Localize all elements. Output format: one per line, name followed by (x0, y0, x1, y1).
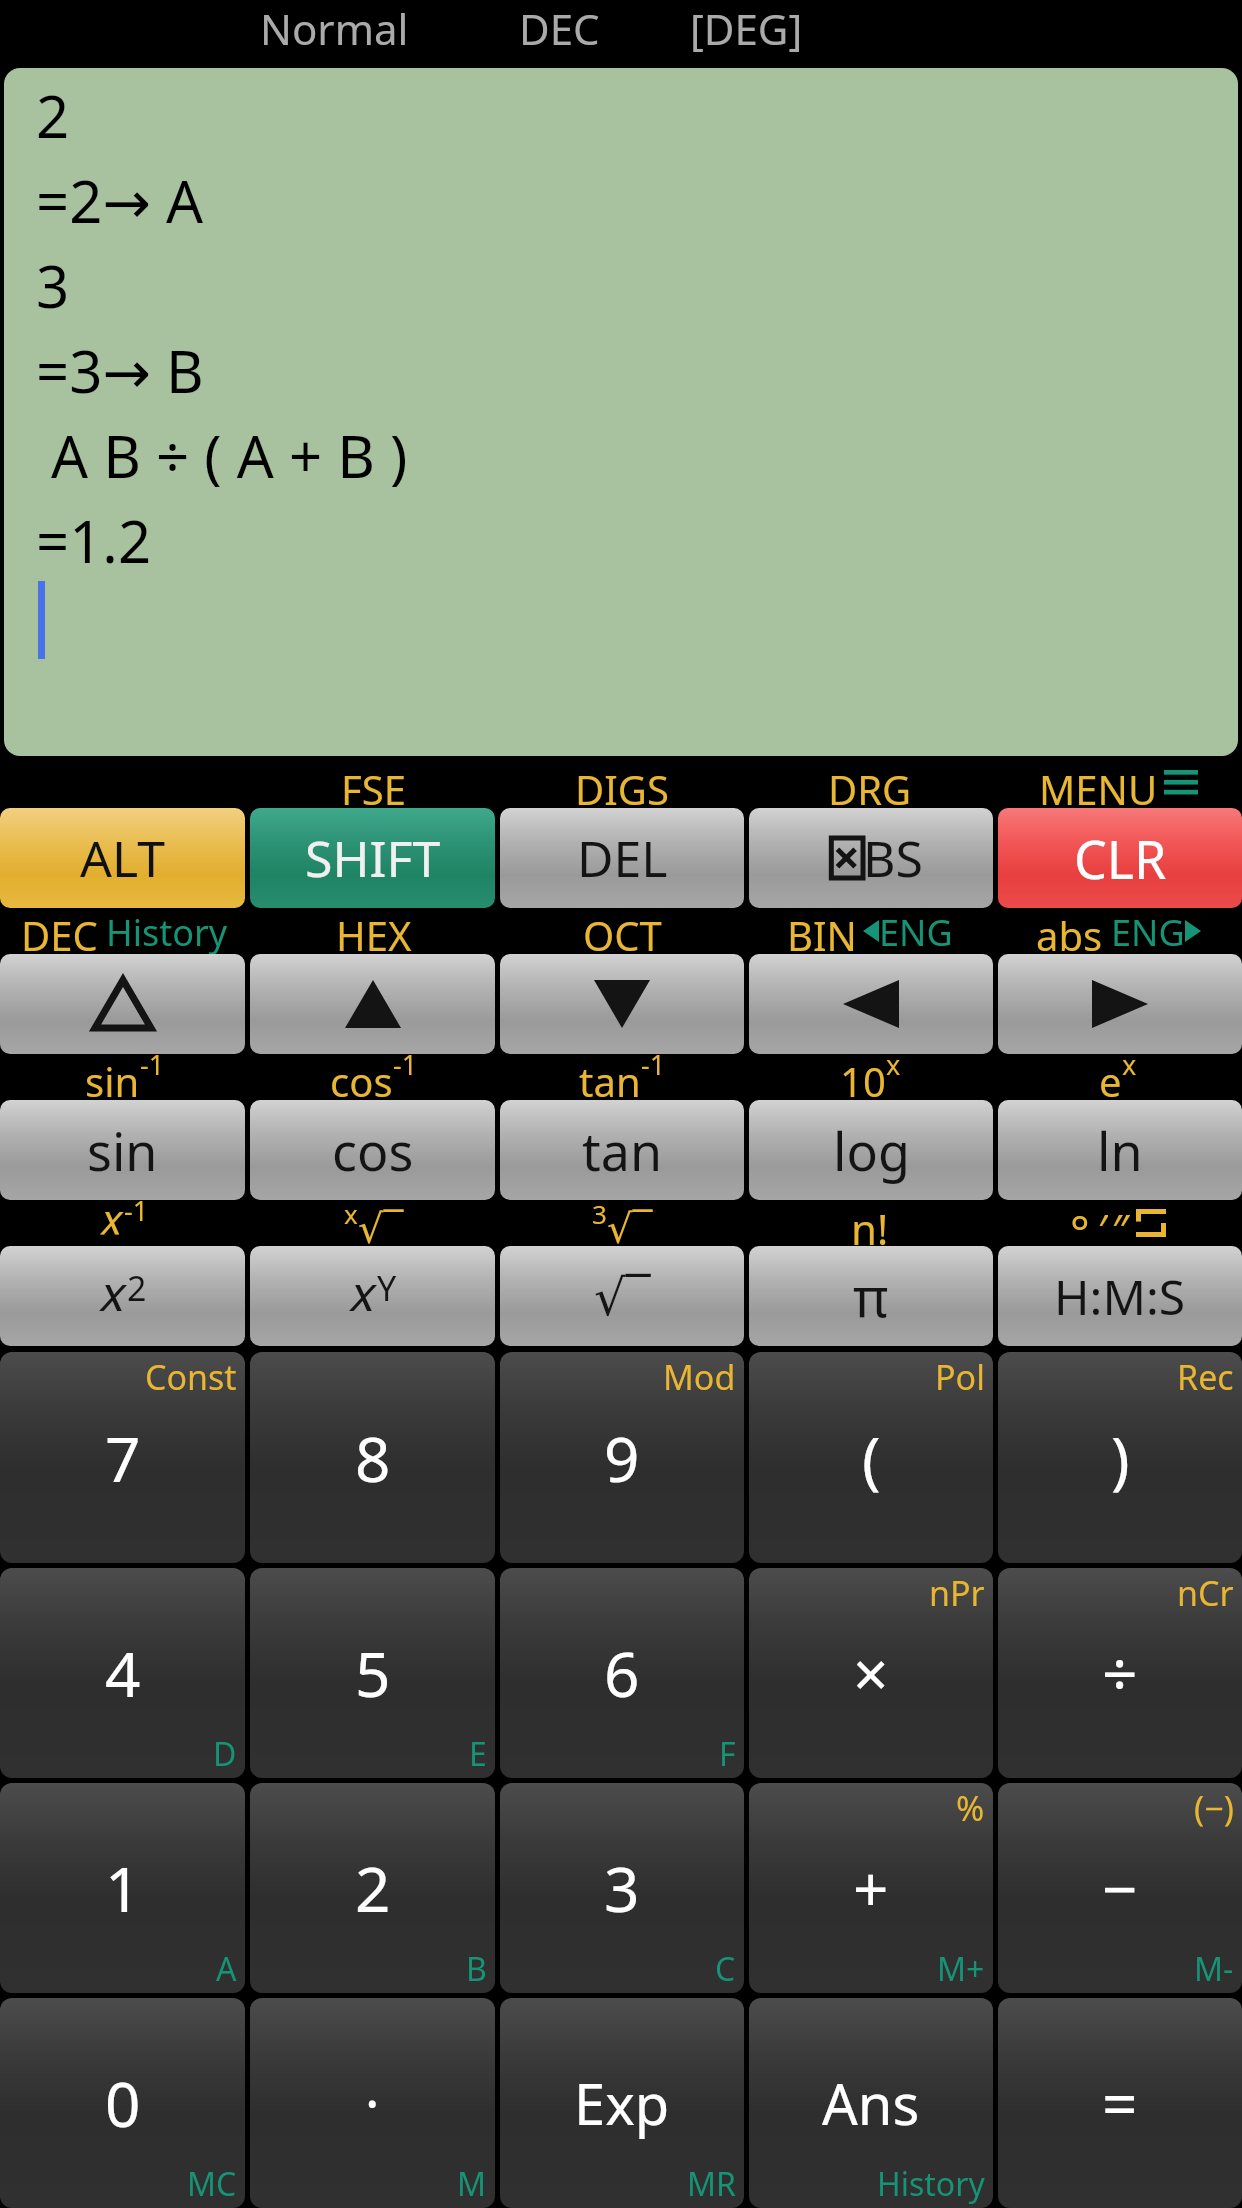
staticText: Pol (935, 1354, 985, 1400)
staticText: DEC (519, 0, 600, 52)
staticText: H:M:S (1054, 1264, 1186, 1329)
staticText: n! (851, 1200, 889, 1246)
staticText: B (466, 1947, 487, 1991)
button[interactable]: · (250, 1998, 495, 2208)
staticText: M (457, 2162, 487, 2206)
staticText: 𝑥 (99, 1271, 127, 1321)
button[interactable]: 𝑥 (0, 1246, 245, 1346)
button[interactable]: Right (998, 954, 1242, 1054)
staticText: 7 (105, 1416, 141, 1500)
button[interactable]: − (998, 1783, 1242, 1993)
staticText: History (106, 908, 228, 954)
button[interactable]: 5 (250, 1568, 495, 1778)
staticText: = (1102, 2061, 1138, 2145)
staticText: % (956, 1785, 985, 1831)
button[interactable]: + (749, 1783, 993, 1993)
button[interactable]: ALT (0, 808, 245, 908)
staticText: 6 (604, 1631, 640, 1715)
button[interactable]: Left (749, 954, 993, 1054)
staticText: Rec (1177, 1354, 1234, 1400)
staticText: ) (1111, 1416, 1130, 1500)
button[interactable]: Up outline (0, 954, 245, 1054)
staticText: ALT (80, 824, 165, 892)
staticText: cos (332, 1115, 414, 1186)
staticText: -1 (393, 1046, 418, 1083)
button[interactable]: 2 (4, 68, 1238, 756)
button[interactable]: H:M:S (998, 1246, 1242, 1346)
button[interactable]: Ans (749, 1998, 993, 2208)
button[interactable]: = (998, 1998, 1242, 2208)
staticText: =2→ A (36, 161, 204, 246)
button[interactable]: √‾ (500, 1246, 744, 1346)
staticText: -1 (641, 1046, 666, 1083)
button[interactable]: 8 (250, 1352, 495, 1563)
staticText: ( (862, 1416, 881, 1500)
button[interactable]: sin (0, 1100, 245, 1200)
button[interactable]: ÷ (998, 1568, 1242, 1778)
button[interactable]: ln (998, 1100, 1242, 1200)
staticText: √‾ (358, 1200, 404, 1246)
staticText: ENG (879, 908, 953, 954)
staticText: 9 (604, 1416, 640, 1500)
button[interactable]: ) (998, 1352, 1242, 1563)
button[interactable]: ( (749, 1352, 993, 1563)
staticText: 10 (840, 1054, 886, 1100)
button[interactable]: 1 (0, 1783, 245, 1993)
staticText: =3→ B (36, 331, 204, 416)
staticText: 3 (592, 1196, 607, 1231)
staticText: BIN (787, 908, 857, 954)
staticText: cos (330, 1054, 393, 1100)
button[interactable]: 4 (0, 1568, 245, 1778)
staticText: 0 (105, 2061, 141, 2145)
button[interactable]: × (749, 1568, 993, 1778)
button[interactable]: π (749, 1246, 993, 1346)
staticText: ′ (1098, 1200, 1108, 1246)
staticText: =1.2 (36, 501, 152, 581)
staticText: · (365, 2066, 380, 2140)
button[interactable]: tan (500, 1100, 744, 1200)
button[interactable]: SHIFT (250, 808, 495, 908)
staticText: 2 (355, 1846, 391, 1930)
staticText: tan (579, 1054, 641, 1100)
staticText: MC (187, 2162, 237, 2206)
staticText: C (715, 1947, 736, 1991)
staticText: 3 (604, 1846, 640, 1930)
staticText: 1 (105, 1846, 141, 1930)
button[interactable]: log (749, 1100, 993, 1200)
staticText: 4 (105, 1631, 141, 1715)
staticText: -1 (124, 1192, 149, 1229)
staticText: + (853, 1846, 889, 1930)
staticText: nCr (1177, 1570, 1234, 1616)
staticText: 2 (127, 1265, 147, 1311)
button[interactable]: Up (250, 954, 495, 1054)
staticText: log (833, 1115, 910, 1186)
button[interactable]: DEL (500, 808, 744, 908)
button[interactable]: 0 (0, 1998, 245, 2208)
staticText: CLR (1074, 823, 1167, 894)
button[interactable]: CLR (998, 808, 1242, 908)
staticText: MENU (1039, 762, 1158, 808)
staticText: ″ (1112, 1200, 1130, 1246)
button[interactable]: 2 (250, 1783, 495, 1993)
staticText: x (1122, 1046, 1137, 1083)
button[interactable]: 7 (0, 1352, 245, 1563)
staticText: sin (87, 1115, 158, 1186)
staticText: 3 (36, 246, 70, 331)
staticText: [DEG] (690, 0, 803, 52)
staticText: OCT (583, 908, 662, 954)
staticText: x (886, 1046, 901, 1083)
button[interactable]: Exp (500, 1998, 744, 2208)
staticText: (−) (1194, 1785, 1234, 1831)
button[interactable]: 3 (500, 1783, 744, 1993)
button[interactable]: BS (749, 808, 993, 908)
staticText: 𝑥 (100, 1200, 124, 1242)
button[interactable]: cos (250, 1100, 495, 1200)
staticText: DEC (21, 908, 98, 954)
button[interactable]: Down (500, 954, 744, 1054)
button[interactable]: 𝑥 (250, 1246, 495, 1346)
staticText: ENG (1111, 908, 1185, 954)
button[interactable]: 9 (500, 1352, 744, 1563)
button[interactable]: 6 (500, 1568, 744, 1778)
staticText: π (853, 1259, 889, 1333)
staticText: − (1102, 1846, 1138, 1930)
